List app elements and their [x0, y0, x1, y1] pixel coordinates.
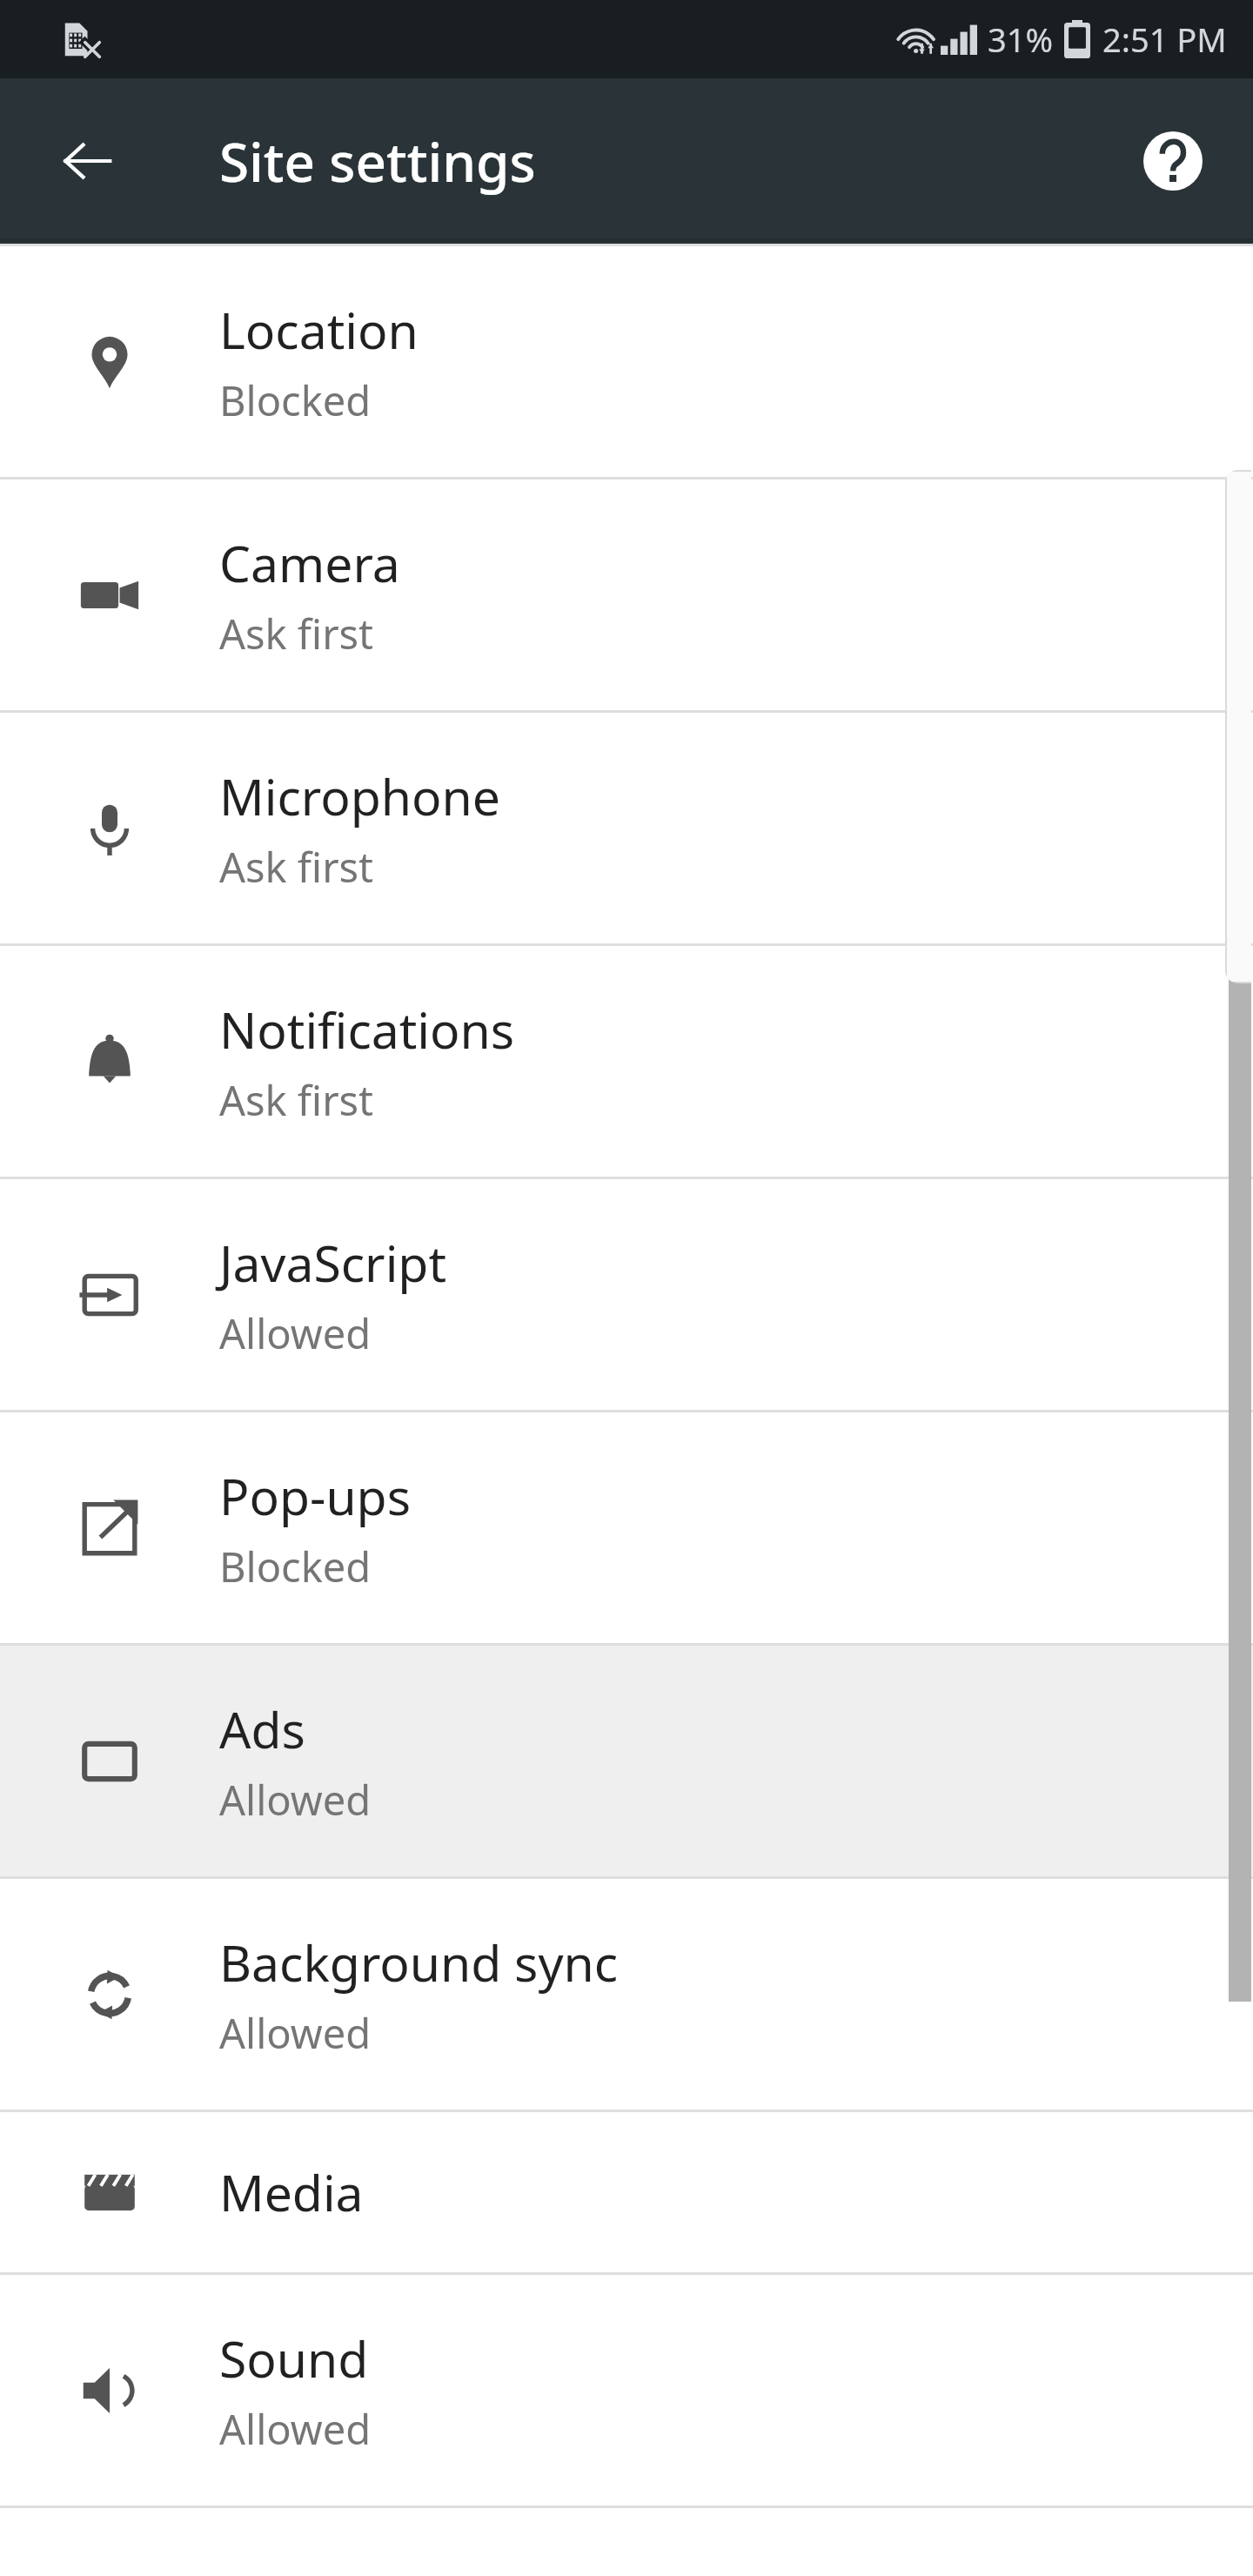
button[interactable]: Back: [45, 119, 129, 203]
staticText: Sound: [219, 2324, 369, 2392]
staticText: Ask first: [219, 839, 374, 895]
staticText: Ask first: [219, 1072, 374, 1128]
staticText: Ads: [219, 1695, 305, 1763]
button[interactable]: Notifications: [0, 946, 1253, 1177]
staticText: Allowed: [219, 2005, 372, 2061]
staticText: 31%: [988, 17, 1054, 62]
button[interactable]: Media: [0, 2112, 1253, 2272]
button[interactable]: Microphone: [0, 713, 1253, 943]
staticText: Site settings: [219, 124, 536, 198]
button[interactable]: Background sync: [0, 1879, 1253, 2110]
staticText: Blocked: [219, 1539, 372, 1594]
staticText: Pop-ups: [219, 1462, 411, 1530]
staticText: Microphone: [219, 762, 500, 830]
staticText: JavaScript: [219, 1229, 447, 1297]
staticText: Location: [219, 296, 419, 364]
button[interactable]: JavaScript: [0, 1179, 1253, 1410]
staticText: 2:51 PM: [1102, 17, 1227, 62]
staticText: Background sync: [219, 1929, 619, 1996]
staticText: Media: [219, 2158, 364, 2226]
staticText: Ask first: [219, 606, 374, 661]
staticText: Allowed: [219, 1772, 372, 1828]
staticText: Allowed: [219, 2401, 372, 2457]
button[interactable]: Pop-ups: [0, 1412, 1253, 1643]
button[interactable]: Sound: [0, 2275, 1253, 2506]
button[interactable]: Camera: [0, 480, 1253, 710]
button[interactable]: Help: [1131, 119, 1215, 203]
staticText: Camera: [219, 529, 400, 597]
staticText: Allowed: [219, 1305, 372, 1361]
button[interactable]: Location: [0, 246, 1253, 477]
staticText: Blocked: [219, 372, 372, 428]
button[interactable]: Ads: [0, 1646, 1253, 1876]
staticText: Notifications: [219, 996, 515, 1063]
